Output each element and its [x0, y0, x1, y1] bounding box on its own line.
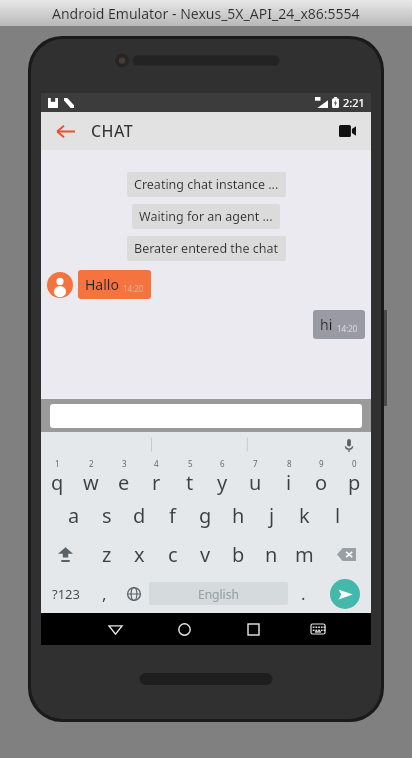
- staticText: ,: [102, 582, 107, 605]
- button[interactable]: ,: [90, 574, 119, 613]
- staticText: 0: [352, 458, 357, 469]
- button[interactable]: Home: [150, 613, 219, 645]
- staticText: Berater entered the chat: [134, 240, 279, 257]
- button[interactable]: 2: [74, 457, 107, 496]
- staticText: .: [301, 582, 306, 605]
- button[interactable]: Video call: [331, 115, 363, 147]
- button[interactable]: 5: [173, 457, 206, 496]
- button[interactable]: Backspace: [321, 535, 371, 574]
- staticText: a: [68, 502, 80, 529]
- staticText: t: [186, 469, 194, 496]
- staticText: p: [348, 469, 361, 496]
- staticText: d: [133, 502, 146, 529]
- button[interactable]: Show keyboard: [288, 613, 347, 645]
- staticText: i: [286, 469, 292, 496]
- button[interactable]: 6: [206, 457, 239, 496]
- button[interactable]: Voice input: [339, 435, 359, 455]
- staticText: 14:20: [123, 283, 144, 294]
- staticText: 3: [122, 458, 127, 469]
- button[interactable]: a: [57, 496, 90, 535]
- staticText: w: [83, 469, 99, 496]
- staticText: r: [152, 469, 161, 496]
- button[interactable]: d: [123, 496, 156, 535]
- staticText: Hallo: [85, 275, 119, 294]
- staticText: n: [265, 541, 278, 568]
- button[interactable]: Hallo: [78, 270, 151, 299]
- staticText: CHAT: [91, 120, 134, 142]
- staticText: 5: [188, 458, 193, 469]
- button[interactable]: x: [123, 535, 156, 574]
- button[interactable]: c: [156, 535, 189, 574]
- button[interactable]: Waiting for an agent ...: [132, 204, 280, 229]
- staticText: j: [269, 502, 275, 529]
- staticText: 8: [287, 458, 292, 469]
- button[interactable]: Back: [80, 613, 150, 645]
- staticText: z: [102, 541, 112, 568]
- staticText: ?123: [52, 585, 80, 603]
- staticText: 7: [253, 458, 258, 469]
- button[interactable]: f: [156, 496, 189, 535]
- button[interactable]: z: [90, 535, 123, 574]
- button[interactable]: Berater entered the chat: [127, 236, 286, 261]
- staticText: Waiting for an agent ...: [139, 208, 273, 225]
- staticText: hi: [320, 315, 333, 334]
- staticText: 4: [154, 458, 159, 469]
- button[interactable]: 8: [272, 457, 305, 496]
- staticText: m: [295, 541, 314, 568]
- staticText: English: [198, 586, 239, 602]
- staticText: l: [335, 502, 341, 529]
- button[interactable]: g: [189, 496, 222, 535]
- staticText: e: [118, 469, 130, 496]
- button[interactable]: hi: [313, 310, 365, 339]
- staticText: Android Emulator - Nexus_5X_API_24_x86:5…: [52, 4, 360, 23]
- staticText: q: [51, 469, 64, 496]
- staticText: Creating chat instance ...: [134, 176, 279, 193]
- staticText: o: [315, 469, 328, 496]
- button[interactable]: k: [288, 496, 321, 535]
- staticText: 1: [55, 458, 60, 469]
- staticText: v: [200, 541, 211, 568]
- staticText: 2:21: [343, 95, 365, 110]
- button[interactable]: l: [321, 496, 354, 535]
- staticText: x: [134, 541, 145, 568]
- button[interactable]: v: [189, 535, 222, 574]
- staticText: f: [169, 502, 176, 529]
- staticText: k: [299, 502, 310, 529]
- staticText: 2: [89, 458, 94, 469]
- button[interactable]: Shift: [41, 535, 90, 574]
- button[interactable]: Change language: [119, 574, 149, 613]
- staticText: 6: [220, 458, 225, 469]
- button[interactable]: Send: [330, 579, 360, 609]
- staticText: u: [249, 469, 262, 496]
- button[interactable]: Recent apps: [219, 613, 288, 645]
- staticText: g: [199, 502, 212, 529]
- staticText: b: [232, 541, 245, 568]
- button[interactable]: .: [288, 574, 318, 613]
- button[interactable]: j: [255, 496, 288, 535]
- button[interactable]: Back: [47, 113, 83, 149]
- staticText: 9: [319, 458, 324, 469]
- button[interactable]: 7: [239, 457, 272, 496]
- button[interactable]: 0: [338, 457, 371, 496]
- button[interactable]: English: [149, 582, 288, 605]
- button[interactable]: s: [90, 496, 123, 535]
- staticText: c: [168, 541, 178, 568]
- staticText: y: [217, 469, 228, 496]
- button[interactable]: n: [255, 535, 288, 574]
- button[interactable]: b: [222, 535, 255, 574]
- button[interactable]: h: [222, 496, 255, 535]
- button[interactable]: 3: [107, 457, 140, 496]
- button[interactable]: 1: [41, 457, 74, 496]
- button[interactable]: ?123: [41, 574, 90, 613]
- button[interactable]: Creating chat instance ...: [127, 172, 286, 197]
- staticText: h: [232, 502, 245, 529]
- button[interactable]: 4: [140, 457, 173, 496]
- staticText: s: [102, 502, 112, 529]
- button[interactable]: m: [288, 535, 321, 574]
- button[interactable]: 9: [305, 457, 338, 496]
- staticText: 14:20: [337, 323, 358, 334]
